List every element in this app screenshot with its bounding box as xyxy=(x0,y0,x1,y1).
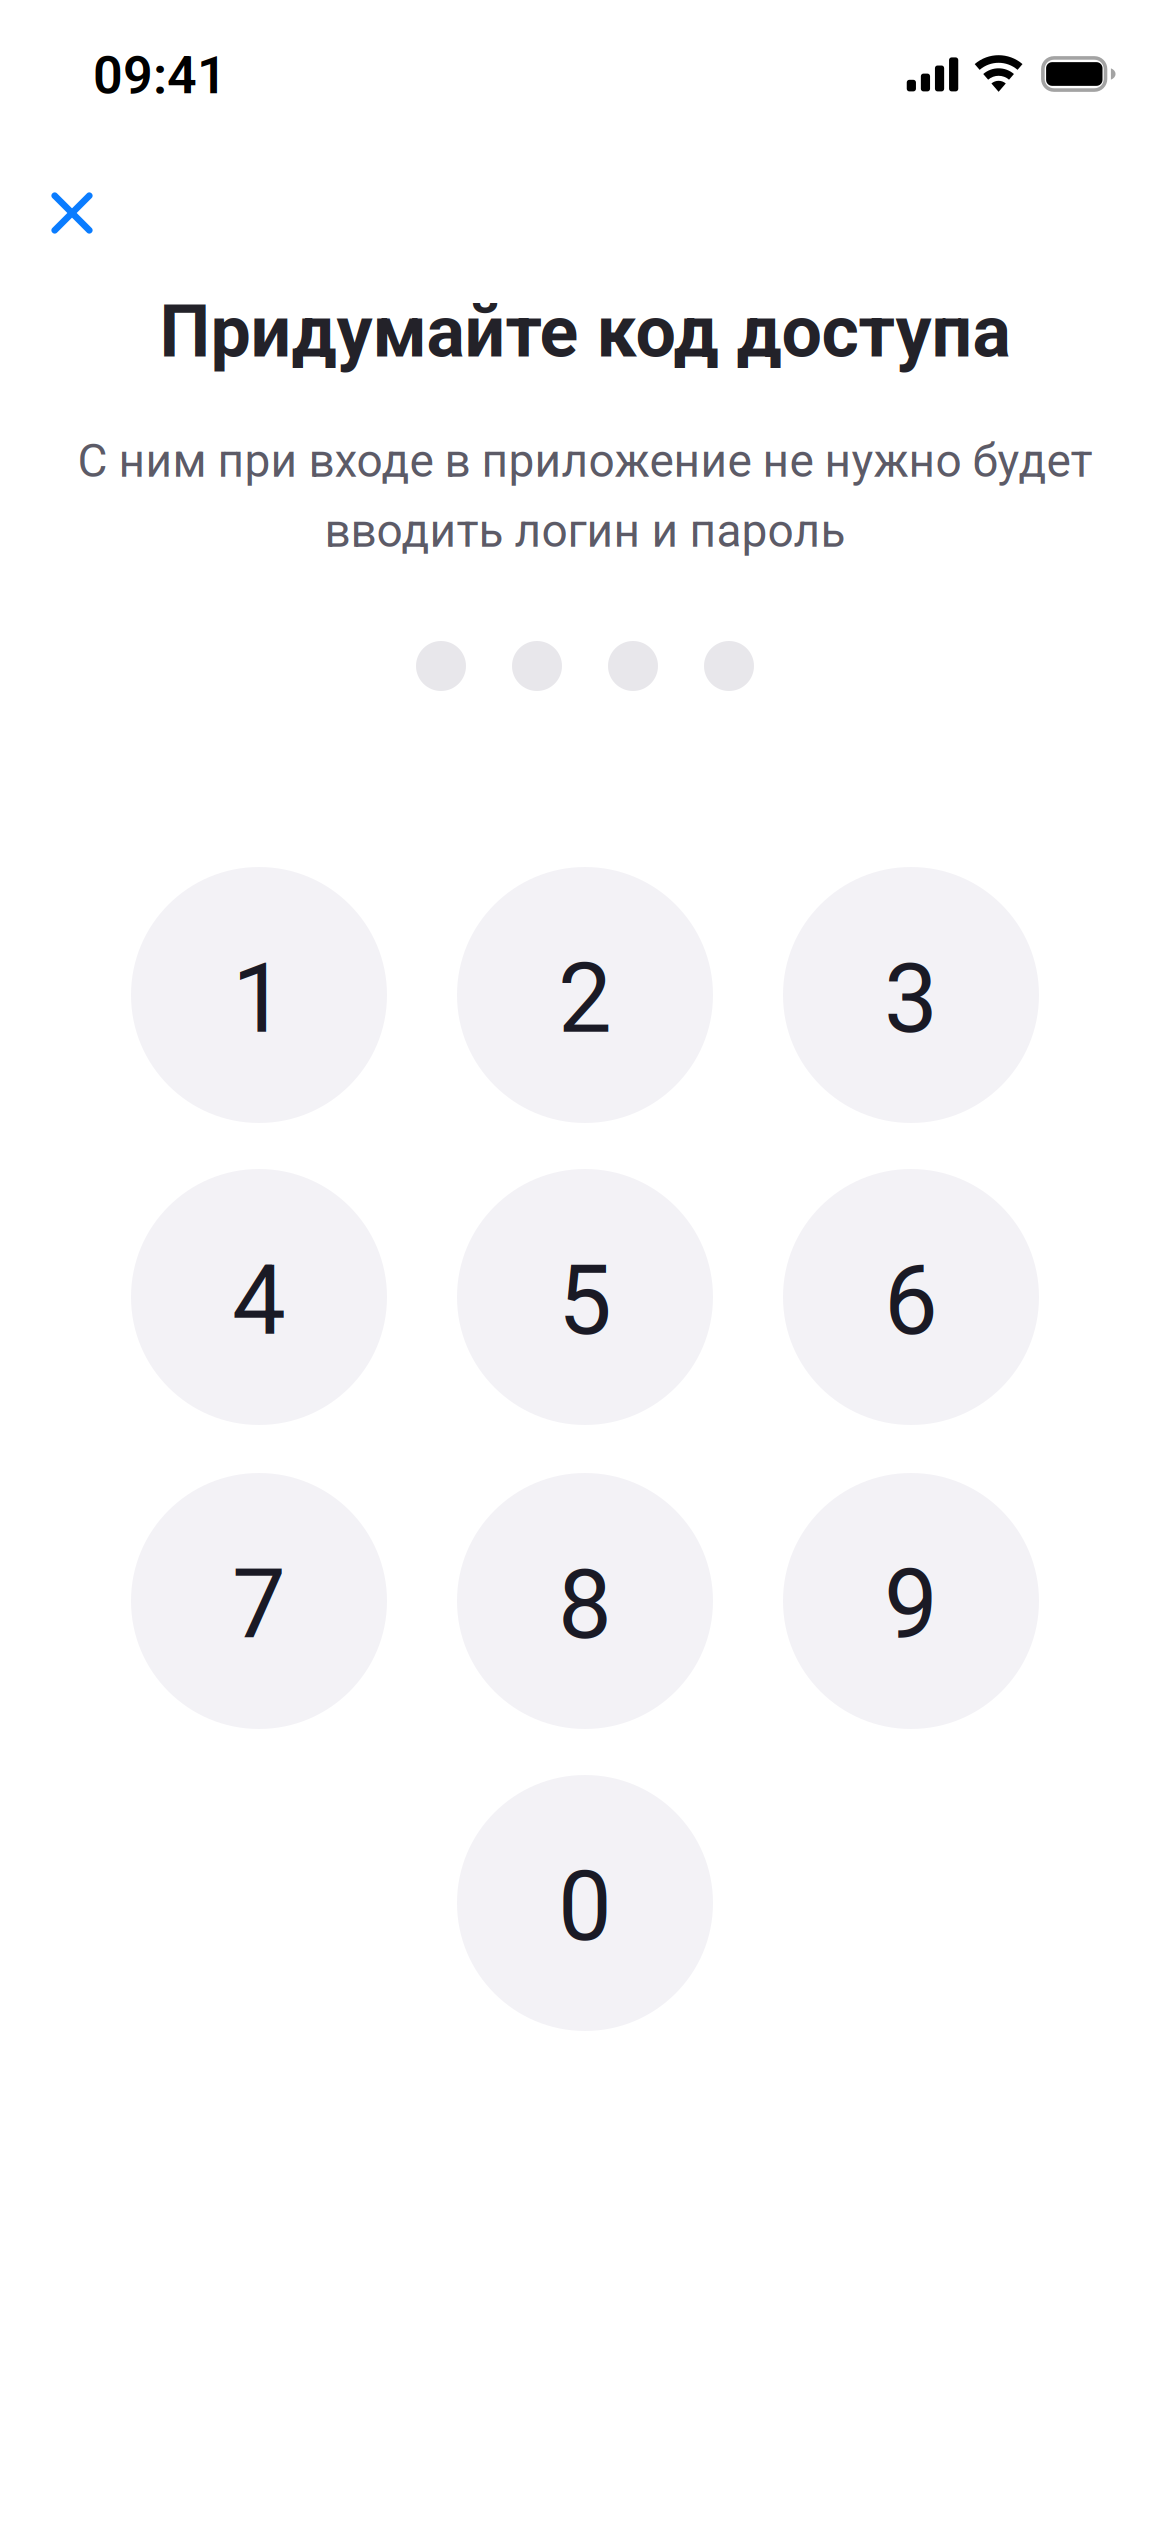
button[interactable]: 0 xyxy=(457,1775,713,2031)
staticText: 4 xyxy=(232,1245,286,1357)
button[interactable]: Закрыть xyxy=(6,147,138,279)
button[interactable]: 8 xyxy=(457,1473,713,1729)
staticText: 1 xyxy=(232,943,286,1055)
staticText: 7 xyxy=(232,1549,286,1661)
button[interactable]: 5 xyxy=(457,1169,713,1425)
staticText: 2 xyxy=(558,943,612,1055)
button[interactable]: 7 xyxy=(131,1473,387,1729)
button[interactable]: 2 xyxy=(457,867,713,1123)
button[interactable]: 3 xyxy=(783,867,1039,1123)
button[interactable]: 6 xyxy=(783,1169,1039,1425)
staticText: 6 xyxy=(884,1245,938,1357)
staticText: 5 xyxy=(558,1245,612,1357)
button[interactable]: 9 xyxy=(783,1473,1039,1729)
staticText: С ним при входе в приложение не нужно бу… xyxy=(77,434,1092,488)
button[interactable]: 1 xyxy=(131,867,387,1123)
staticText: вводить логин и пароль xyxy=(324,504,845,558)
staticText: 0 xyxy=(558,1851,612,1963)
staticText: 9 xyxy=(884,1549,938,1661)
staticText: 3 xyxy=(884,943,938,1055)
button[interactable]: 4 xyxy=(131,1169,387,1425)
staticText: 8 xyxy=(558,1549,612,1661)
staticText: 09:41 xyxy=(93,45,227,106)
staticText: Придумайте код доступа xyxy=(159,290,1010,374)
